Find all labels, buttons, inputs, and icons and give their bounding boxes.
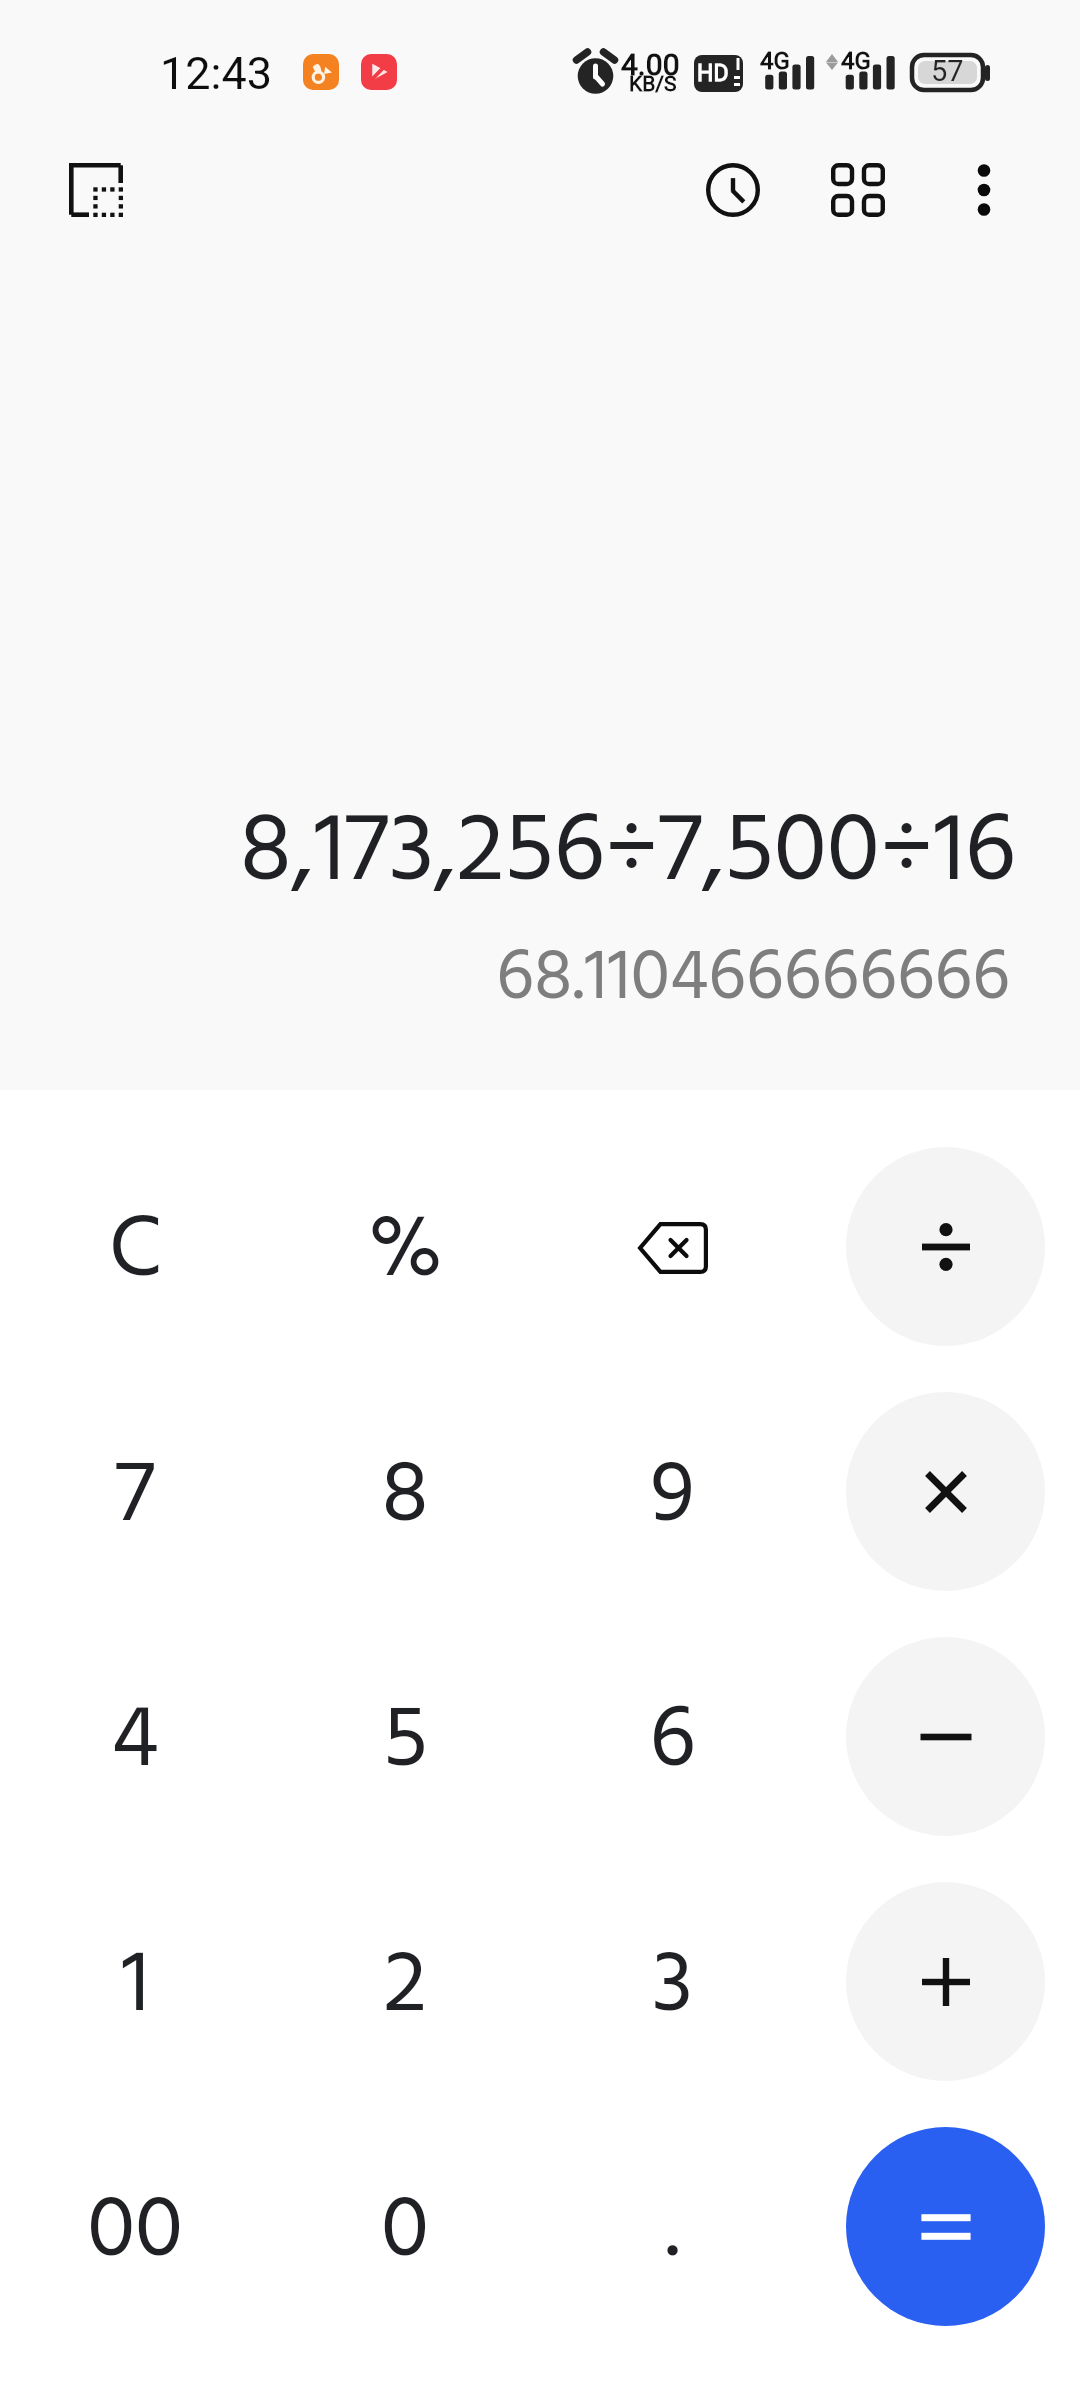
staticText: 8: [381, 1427, 429, 1568]
staticText: 0: [381, 2162, 429, 2303]
button[interactable]: 8: [285, 1392, 525, 1602]
staticText: 7: [115, 1427, 155, 1568]
staticText: 6: [649, 1672, 696, 1813]
staticText: 00: [87, 2162, 183, 2303]
staticText: 4G: [760, 47, 790, 75]
staticText: %: [368, 1182, 443, 1323]
button[interactable]: Equals: [846, 2127, 1045, 2326]
button[interactable]: Add: [846, 1882, 1045, 2081]
button[interactable]: 1: [15, 1882, 255, 2092]
staticText: 4G: [841, 47, 871, 75]
staticText: 9: [650, 1427, 695, 1568]
staticText: KB/S: [629, 72, 677, 97]
button[interactable]: Scientific mode: [42, 136, 150, 244]
staticText: 12:43: [160, 47, 273, 100]
button[interactable]: 0: [285, 2127, 525, 2337]
staticText: 1: [121, 1917, 150, 2058]
button[interactable]: 6: [552, 1637, 792, 1847]
button[interactable]: 3: [552, 1882, 792, 2092]
button[interactable]: 5: [285, 1637, 525, 1847]
staticText: .: [665, 2162, 680, 2303]
button[interactable]: %: [285, 1147, 525, 1357]
staticText: 68.110466666666: [496, 922, 1010, 1037]
button[interactable]: History: [679, 136, 787, 244]
button[interactable]: 00: [15, 2127, 255, 2337]
button[interactable]: C: [15, 1147, 255, 1357]
staticText: 8,173,256÷7,500÷16: [239, 776, 1016, 932]
button[interactable]: 2: [285, 1882, 525, 2092]
button[interactable]: Converters: [804, 136, 912, 244]
button[interactable]: Multiply: [846, 1392, 1045, 1591]
staticText: 2: [383, 1917, 427, 2058]
staticText: C: [109, 1182, 162, 1323]
staticText: 5: [383, 1672, 428, 1813]
button[interactable]: More options: [930, 136, 1038, 244]
button[interactable]: Backspace: [552, 1143, 792, 1353]
staticText: HD: [697, 60, 729, 87]
button[interactable]: .: [552, 2127, 792, 2337]
staticText: 4.00: [621, 47, 680, 82]
button[interactable]: 7: [15, 1392, 255, 1602]
staticText: 4: [111, 1672, 159, 1813]
button[interactable]: 4: [15, 1637, 255, 1847]
staticText: 57: [931, 54, 964, 88]
button[interactable]: Subtract: [846, 1637, 1045, 1836]
button[interactable]: Divide: [846, 1147, 1045, 1346]
button[interactable]: 9: [552, 1392, 792, 1602]
staticText: 3: [652, 1917, 693, 2058]
